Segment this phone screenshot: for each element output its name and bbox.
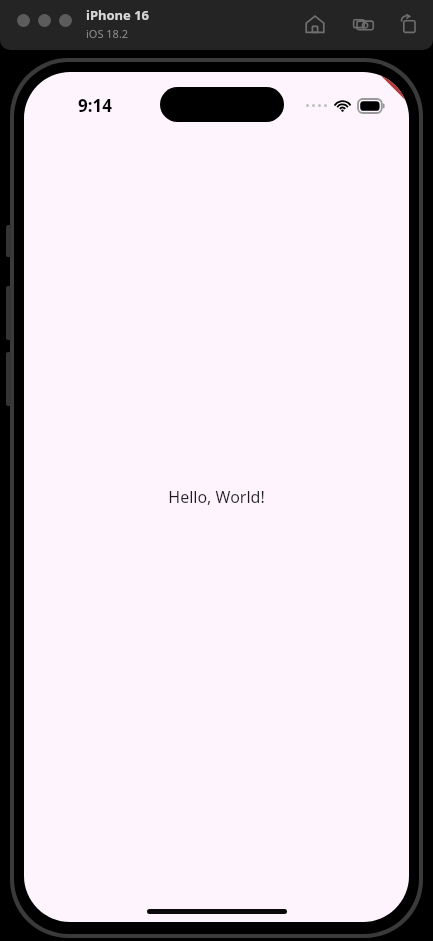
staticText: 9:14 bbox=[78, 94, 112, 117]
button[interactable]: Volume down bbox=[6, 352, 11, 406]
button[interactable]: Window control bbox=[38, 14, 51, 27]
button[interactable]: Volume up bbox=[6, 286, 11, 340]
staticText: DEBUG bbox=[371, 72, 409, 90]
staticText: iPhone 16 bbox=[86, 6, 149, 24]
staticText: Hello, World! bbox=[168, 486, 265, 508]
button[interactable]: Screenshot bbox=[348, 9, 378, 39]
button[interactable]: Rotate bbox=[394, 9, 424, 39]
button[interactable]: Window control bbox=[59, 14, 72, 27]
staticText: iOS 18.2 bbox=[86, 26, 129, 41]
button[interactable]: Action button bbox=[6, 225, 11, 257]
button[interactable]: Home bbox=[300, 9, 330, 39]
button[interactable]: Window control bbox=[17, 14, 30, 27]
